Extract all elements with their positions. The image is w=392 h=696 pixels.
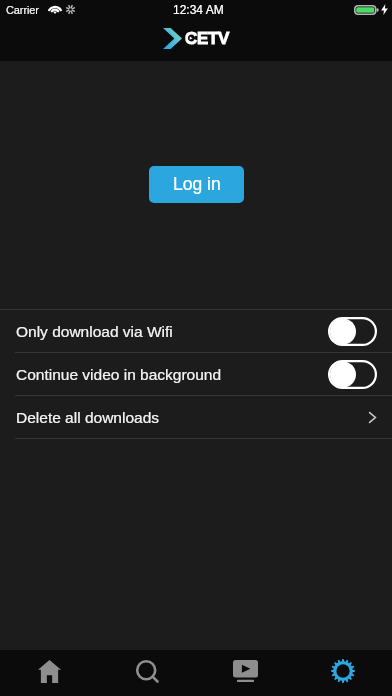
staticText: Only download via Wifi: [16, 323, 173, 340]
staticText: CETV: [185, 29, 230, 48]
button[interactable]: Settings: [294, 650, 392, 696]
staticText: Delete all downloads: [16, 409, 160, 426]
staticText: 12:34 AM: [173, 3, 224, 16]
button[interactable]: Only download via Wifi: [0, 310, 392, 352]
staticText: Log in: [173, 174, 221, 194]
button[interactable]: Delete all downloads: [0, 396, 392, 438]
staticText: Continue video in background: [16, 366, 222, 383]
button[interactable]: Log in: [149, 166, 244, 203]
staticText: Carrier: [6, 4, 39, 16]
button[interactable]: Home: [0, 650, 98, 696]
button[interactable]: Live TV: [196, 650, 294, 696]
button[interactable]: Continue video in background: [0, 353, 392, 395]
button[interactable]: Search: [98, 650, 196, 696]
